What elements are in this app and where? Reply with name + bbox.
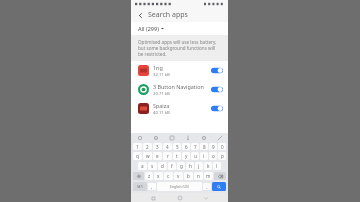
button[interactable]: 0 (218, 143, 226, 150)
staticText: 30.71 kB (153, 91, 170, 97)
staticText: 40.11 kB (153, 110, 170, 116)
button[interactable]: m (204, 172, 213, 180)
staticText: z (148, 173, 151, 179)
button[interactable]: Recents (149, 194, 157, 202)
button[interactable]: k (204, 162, 212, 170)
staticText: n (197, 173, 200, 179)
staticText: x (157, 173, 160, 179)
staticText: Optimised apps will use less battery, bu… (138, 39, 221, 57)
button[interactable]: d (158, 162, 167, 170)
staticText: v (177, 173, 180, 179)
button[interactable]: b (184, 172, 193, 180)
staticText: 3 Button Navigation Bar (153, 83, 208, 90)
staticText: 6 (185, 144, 188, 150)
button[interactable]: Toggle 3 Button Navigation Bar (211, 86, 223, 93)
button[interactable]: j (195, 162, 203, 170)
button[interactable]: Keyboard tool 6 (216, 134, 223, 141)
staticText: 8 (203, 144, 206, 150)
staticText: y (185, 153, 188, 159)
button[interactable]: p (218, 152, 226, 160)
button[interactable]: u (191, 152, 199, 160)
staticText: , (151, 184, 153, 190)
staticText: 2 (146, 144, 149, 150)
button[interactable]: 5 (173, 143, 181, 150)
button[interactable]: l (213, 162, 221, 170)
staticText: 5 (176, 144, 179, 150)
button[interactable]: 1ng (131, 61, 228, 80)
button[interactable]: g (177, 162, 185, 170)
button[interactable]: Keyboard tool 4 (184, 134, 191, 141)
button[interactable]: , (148, 183, 156, 190)
staticText: j (198, 163, 200, 169)
staticText: . (206, 184, 208, 190)
button[interactable]: x (154, 172, 163, 180)
button[interactable]: !#1 (133, 182, 147, 191)
staticText: English (US) (170, 184, 189, 189)
button[interactable]: Toggle Spaiza (211, 105, 223, 112)
staticText: l (216, 163, 218, 169)
button[interactable]: 1 (133, 143, 142, 150)
button[interactable]: Keyboard tool 1 (136, 134, 143, 141)
button[interactable]: q (133, 152, 142, 160)
button[interactable]: r (163, 152, 172, 160)
button[interactable]: Keyboard tool 5 (200, 134, 207, 141)
staticText: m (206, 173, 211, 179)
button[interactable]: 7 (191, 143, 199, 150)
button[interactable]: h (186, 162, 194, 170)
staticText: f (171, 163, 173, 169)
staticText: u (194, 153, 197, 159)
staticText: t (176, 153, 178, 159)
button[interactable]: Shift (133, 172, 144, 180)
button[interactable]: o (209, 152, 217, 160)
button[interactable]: All (299) (138, 25, 164, 32)
button[interactable]: f (168, 162, 176, 170)
button[interactable]: 8 (200, 143, 208, 150)
staticText: 3 (156, 144, 159, 150)
button[interactable]: English (US) (157, 182, 202, 191)
staticText: r (167, 153, 169, 159)
button[interactable]: Search (212, 182, 226, 191)
staticText: b (187, 173, 190, 179)
button[interactable]: z (145, 172, 153, 180)
staticText: 32.11 kB (153, 72, 170, 78)
button[interactable]: Keyboard tool 3 (168, 134, 175, 141)
button[interactable]: 6 (182, 143, 190, 150)
button[interactable]: Spaiza (131, 99, 228, 118)
staticText: p (221, 153, 224, 159)
staticText: 1ng (153, 64, 163, 71)
staticText: d (161, 163, 164, 169)
button[interactable]: 3 (153, 143, 162, 150)
button[interactable]: Keyboard tool 2 (152, 134, 159, 141)
staticText: i (203, 153, 205, 159)
staticText: Search apps (148, 10, 188, 20)
staticText: s (151, 163, 154, 169)
button[interactable]: v (174, 172, 183, 180)
button[interactable]: Back (202, 194, 210, 202)
button[interactable]: 2 (143, 143, 152, 150)
button[interactable]: e (153, 152, 162, 160)
button[interactable]: 9 (209, 143, 217, 150)
staticText: a (141, 163, 144, 169)
button[interactable]: y (182, 152, 190, 160)
button[interactable]: c (164, 172, 173, 180)
button[interactable]: Backspace (214, 172, 226, 180)
button[interactable]: . (203, 183, 211, 190)
staticText: Spaiza (153, 102, 170, 109)
staticText: k (207, 163, 210, 169)
button[interactable]: n (194, 172, 203, 180)
button[interactable]: i (200, 152, 208, 160)
button[interactable]: w (143, 152, 152, 160)
staticText: 7 (194, 144, 197, 150)
button[interactable]: Home (176, 194, 184, 202)
button[interactable]: 3 Button Navigation Bar (131, 80, 228, 99)
button[interactable]: t (173, 152, 181, 160)
button[interactable]: s (148, 162, 157, 170)
staticText: 1 (136, 144, 139, 150)
staticText: e (156, 153, 159, 159)
button[interactable]: 4 (163, 143, 172, 150)
button[interactable]: a (138, 162, 147, 170)
staticText: c (167, 173, 170, 179)
button[interactable]: Toggle 1ng (211, 67, 223, 74)
button[interactable]: Back (135, 10, 146, 21)
staticText: w (146, 153, 150, 159)
